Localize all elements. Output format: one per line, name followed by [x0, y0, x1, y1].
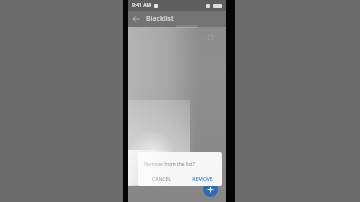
button[interactable]: REMOVE: [187, 173, 218, 186]
staticText: 9:41 AM: [132, 2, 152, 9]
staticText: REMOVE: [192, 176, 213, 183]
staticText: Remove from the list?: [144, 161, 195, 168]
staticText: Blacklist: [146, 14, 174, 24]
button[interactable]: CANCEL: [146, 173, 177, 186]
button[interactable]: Navigate up: [128, 11, 144, 27]
button[interactable]: Favorite: [204, 31, 216, 43]
button[interactable]: Add: [203, 182, 218, 197]
staticText: CANCEL: [152, 176, 171, 183]
